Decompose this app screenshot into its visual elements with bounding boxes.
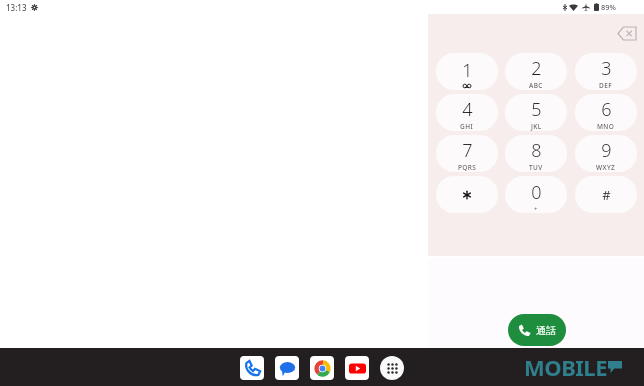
staticText: JKL (531, 122, 542, 131)
button[interactable]: 4 (436, 94, 498, 131)
button[interactable]: 0 (505, 176, 567, 213)
staticText: 3 (601, 56, 612, 81)
staticText: TUV (529, 163, 543, 172)
button[interactable]: Phone (240, 356, 264, 380)
button[interactable]: 3 (575, 53, 637, 90)
staticText: 2 (531, 56, 542, 81)
staticText: 5 (531, 97, 542, 122)
staticText: 9 (601, 138, 612, 163)
staticText: 6 (601, 97, 612, 122)
staticText: 13:13 (6, 2, 27, 13)
button[interactable]: 9 (575, 135, 637, 172)
button[interactable]: 6 (575, 94, 637, 131)
staticText: MNO (597, 122, 615, 131)
staticText: 7 (462, 138, 473, 163)
button[interactable]: All apps (380, 356, 404, 380)
button[interactable] (436, 176, 498, 213)
staticText: 8 (531, 138, 542, 163)
staticText: # (602, 186, 611, 204)
button[interactable]: 2 (505, 53, 567, 90)
staticText: + (534, 205, 538, 213)
staticText: 4 (462, 97, 473, 122)
staticText: 0 (531, 180, 542, 205)
button[interactable]: 7 (436, 135, 498, 172)
button[interactable]: 8 (505, 135, 567, 172)
staticText: MOBILE (524, 352, 607, 382)
button[interactable]: 通話 (508, 314, 566, 346)
staticText: 1 (462, 58, 473, 83)
button[interactable]: 1 (436, 53, 498, 90)
staticText: 89% (601, 2, 616, 12)
staticText: DEF (599, 81, 613, 90)
staticText: GHI (460, 122, 474, 131)
button[interactable]: 5 (505, 94, 567, 131)
staticText: PQRS (458, 163, 477, 172)
button[interactable]: Chrome (310, 356, 334, 380)
button[interactable]: YouTube (345, 356, 369, 380)
button[interactable]: Messages (275, 356, 299, 380)
staticText: ABC (529, 81, 543, 90)
staticText: WXYZ (596, 163, 616, 172)
button[interactable]: # (575, 176, 637, 213)
staticText: 通話 (536, 324, 556, 337)
button[interactable]: Backspace (614, 22, 640, 44)
